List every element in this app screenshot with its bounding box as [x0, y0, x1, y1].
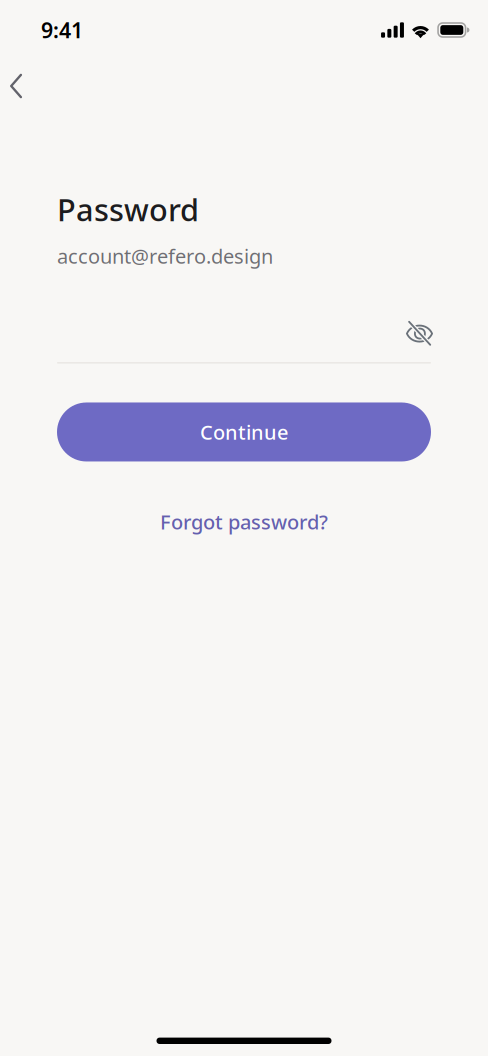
button[interactable]: Forgot password?: [160, 501, 328, 542]
button[interactable]: Continue: [57, 402, 431, 461]
staticText: account@refero.design: [57, 243, 273, 269]
staticText: Password: [57, 189, 199, 230]
staticText: Continue: [200, 419, 288, 445]
button[interactable]: Show password: [399, 315, 431, 351]
staticText: Forgot password?: [160, 508, 328, 535]
button[interactable]: Back: [10, 62, 56, 110]
staticText: 9:41: [41, 16, 83, 44]
